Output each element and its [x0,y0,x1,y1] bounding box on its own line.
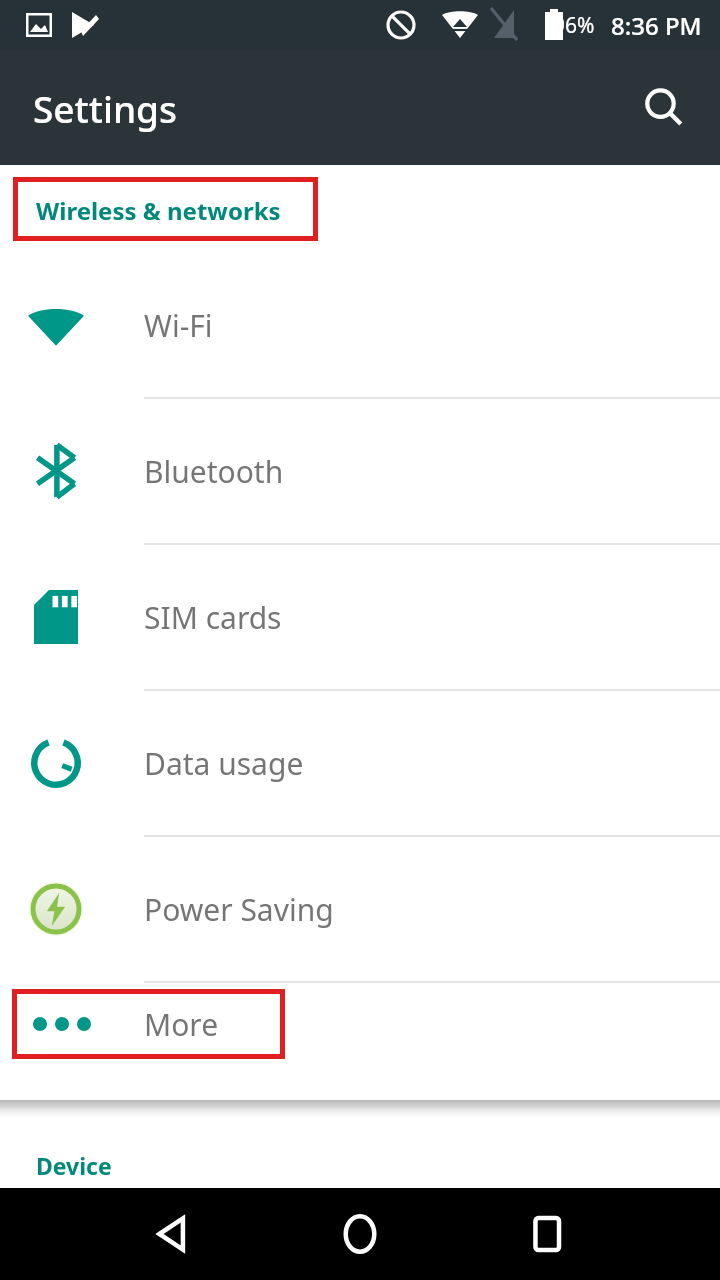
button[interactable]: Home [314,1188,406,1280]
button[interactable]: Wi-Fi [0,253,720,399]
staticText: Settings [33,83,178,133]
button[interactable]: Bluetooth [0,399,720,545]
staticText: SIM cards [144,597,282,638]
staticText: Wi-Fi [144,305,213,346]
staticText: Device [36,1150,112,1181]
staticText: Wireless & networks [36,194,281,227]
button[interactable]: Data usage [0,691,720,837]
staticText: 8:36 PM [611,9,702,42]
staticText: 96% [553,11,595,40]
staticText: More [144,1004,219,1045]
button[interactable]: Power Saving [0,837,720,983]
button[interactable]: More [0,983,720,1065]
staticText: Power Saving [144,889,334,930]
button[interactable]: Search [632,76,696,140]
staticText: Data usage [144,743,304,784]
button[interactable]: SIM cards [0,545,720,691]
staticText: Bluetooth [144,451,284,492]
button[interactable]: Recent apps [502,1188,594,1280]
button[interactable]: Back [126,1188,218,1280]
